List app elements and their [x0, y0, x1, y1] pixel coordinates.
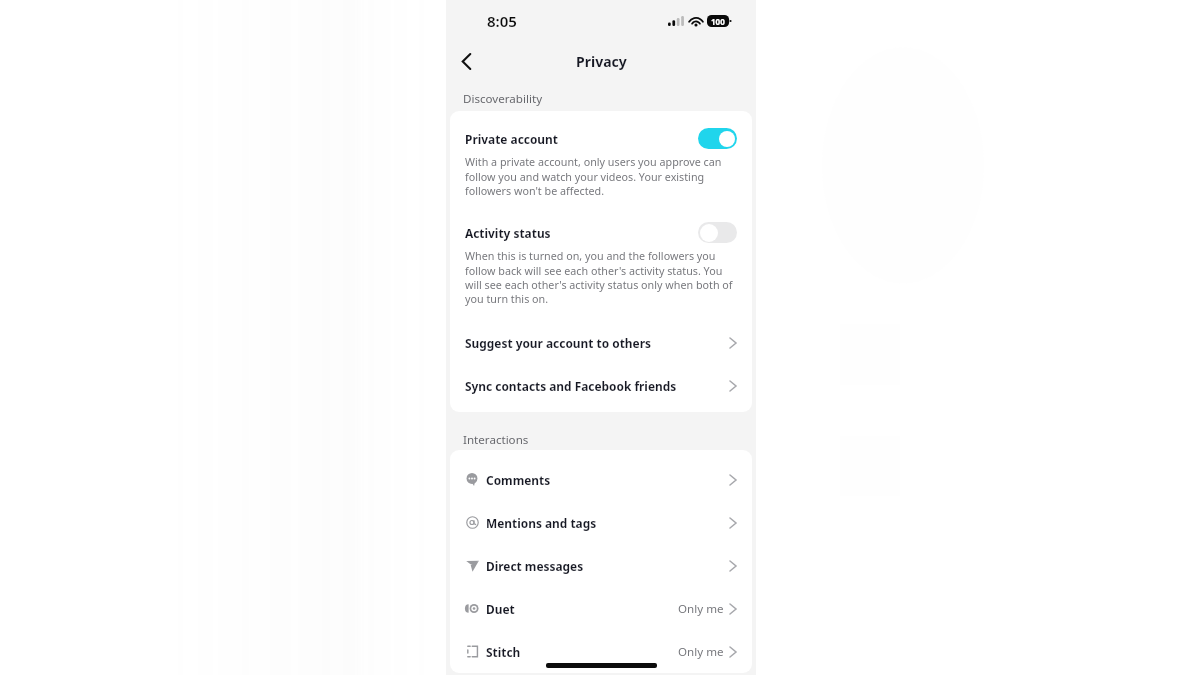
staticText: When this is turned on, you and the foll…: [465, 249, 737, 306]
button[interactable]: Direct messages: [450, 544, 752, 587]
staticText: Duet: [486, 601, 678, 617]
button[interactable]: Suggest your account to others: [450, 321, 752, 364]
button[interactable]: Sync contacts and Facebook friends: [450, 364, 752, 407]
staticText: 100: [711, 16, 725, 27]
button[interactable]: Activity status: [450, 205, 752, 321]
button[interactable]: Stitch: [450, 630, 752, 673]
staticText: Stitch: [486, 644, 678, 660]
staticText: Discoverability: [463, 91, 543, 107]
staticText: Direct messages: [486, 558, 730, 574]
button[interactable]: Switch on: [698, 128, 737, 149]
button[interactable]: Switch off: [698, 222, 737, 243]
button[interactable]: Comments: [450, 458, 752, 501]
staticText: Activity status: [465, 225, 698, 241]
staticText: Suggest your account to others: [465, 335, 730, 351]
staticText: Comments: [486, 472, 730, 488]
staticText: Private account: [465, 131, 698, 147]
staticText: Only me: [678, 601, 724, 617]
button[interactable]: Duet: [450, 587, 752, 630]
staticText: Mentions and tags: [486, 515, 730, 531]
button[interactable]: Mentions and tags: [450, 501, 752, 544]
staticText: With a private account, only users you a…: [465, 155, 737, 198]
button[interactable]: Private account: [450, 111, 752, 205]
staticText: Only me: [678, 644, 724, 660]
staticText: 8:05: [487, 11, 517, 31]
staticText: Privacy: [576, 52, 627, 71]
staticText: Interactions: [463, 432, 529, 448]
button[interactable]: Back: [449, 44, 483, 78]
staticText: Sync contacts and Facebook friends: [465, 378, 730, 394]
